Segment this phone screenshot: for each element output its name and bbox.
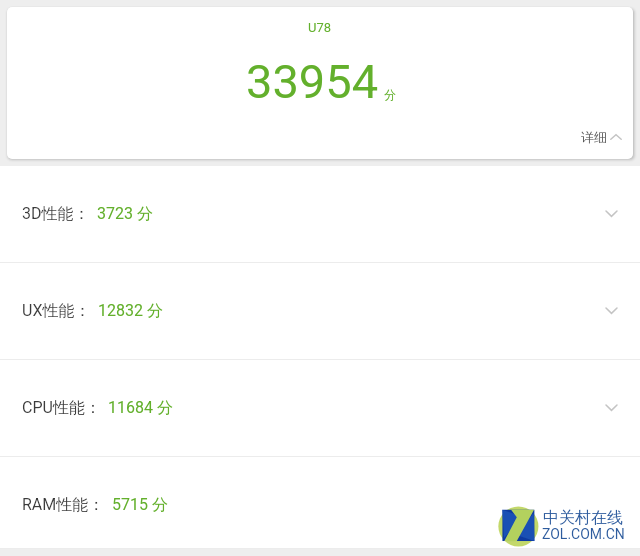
staticText: 分 <box>384 87 396 102</box>
other: Collapse details <box>610 134 622 140</box>
staticText: U78 <box>308 20 332 35</box>
staticText: CPU性能： <box>22 398 101 418</box>
other: Expand <box>605 307 618 315</box>
button[interactable]: CPU性能： <box>0 360 640 456</box>
staticText: 5715 分 <box>112 495 168 515</box>
staticText: 详细 <box>581 129 607 145</box>
staticText: 中关村在线 <box>543 508 623 528</box>
staticText: 12832 分 <box>98 301 163 321</box>
staticText: 33954 <box>246 54 379 109</box>
button[interactable]: 3D性能： <box>0 166 640 262</box>
staticText: UX性能： <box>22 301 91 321</box>
staticText: 3D性能： <box>22 204 90 224</box>
other: Expand <box>605 210 618 218</box>
staticText: RAM性能： <box>22 495 105 515</box>
staticText: 3723 分 <box>97 204 153 224</box>
button[interactable]: UX性能： <box>0 263 640 359</box>
button[interactable]: 详细 <box>567 121 633 159</box>
staticText: 11684 分 <box>108 398 173 418</box>
other: Expand <box>605 404 618 412</box>
staticText: ZOL.COM.CN <box>542 526 625 542</box>
button[interactable]: RAM性能： <box>0 457 640 553</box>
